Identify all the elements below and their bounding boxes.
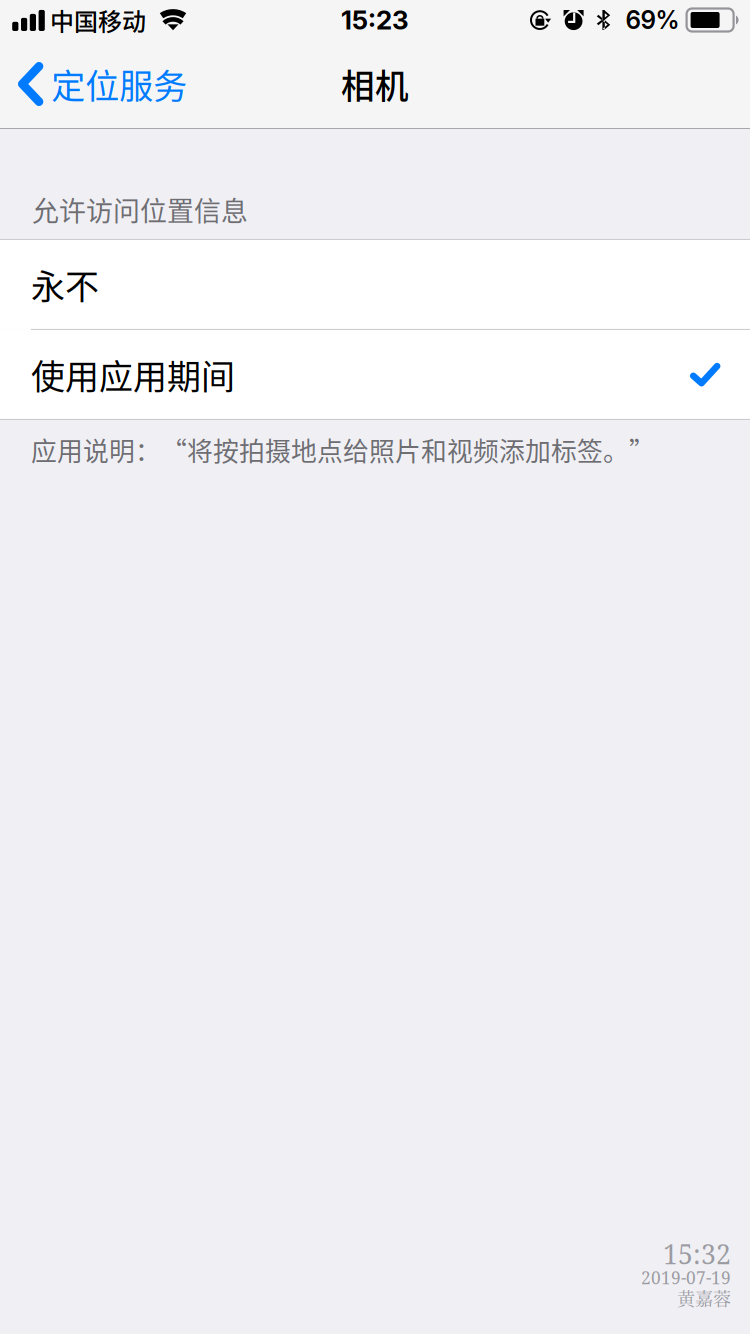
- staticText: 定位服务: [51, 59, 187, 109]
- staticText: 2019-07-19: [641, 1266, 731, 1289]
- staticText: 应用说明：“将按拍摄地点给照片和视频添加标签。”: [31, 431, 655, 468]
- button[interactable]: 返回定位服务: [0, 40, 201, 128]
- staticText: 15:32: [663, 1236, 731, 1272]
- staticText: 69%: [626, 5, 680, 35]
- staticText: 允许访问位置信息: [32, 190, 248, 229]
- button[interactable]: 使用应用期间: [0, 330, 750, 419]
- staticText: 中国移动: [50, 3, 146, 37]
- staticText: 永不: [31, 260, 99, 309]
- staticText: 黄嘉蓉: [677, 1285, 731, 1311]
- staticText: 相机: [341, 60, 409, 108]
- staticText: 使用应用期间: [31, 350, 235, 399]
- button[interactable]: 永不: [0, 240, 750, 329]
- staticText: 15:23: [341, 4, 409, 36]
